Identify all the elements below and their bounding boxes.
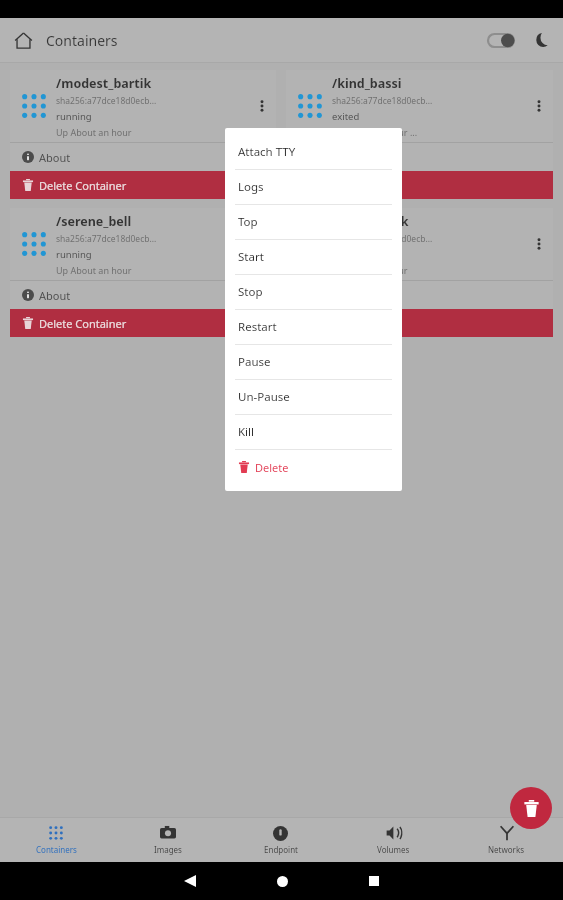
button[interactable]: Images [112,818,224,862]
button[interactable]: More options [525,208,553,280]
button[interactable]: /modest_bartik [10,70,276,171]
staticText: Logs [238,179,264,195]
button[interactable]: Kill [225,415,402,449]
button[interactable]: Top [225,205,402,239]
staticText: Restart [238,319,277,335]
staticText: Top [238,214,258,230]
button[interactable]: More options [248,70,276,142]
staticText: Delete Container [39,178,127,193]
staticText: sha256:a77dce18d0ecb... [56,233,157,245]
button[interactable]: Containers [0,818,112,862]
button[interactable]: About [286,281,553,309]
staticText: Networks [488,844,525,855]
staticText: sha256:a77dce18d0ecb... [56,95,157,107]
staticText: running [56,248,92,261]
button[interactable]: About [10,143,276,171]
staticText: Images [154,844,182,855]
button[interactable]: /serene_bell [10,208,276,309]
staticText: Attach TTY [238,144,296,160]
button[interactable]: More options [525,70,553,142]
staticText: Start [238,249,264,265]
button[interactable]: Restart [225,310,402,344]
button[interactable]: More options [248,208,276,280]
staticText: exited [332,110,360,123]
staticText: Containers [36,844,77,855]
button[interactable]: Toggle theme [479,18,523,62]
staticText: Delete Container [39,316,127,331]
staticText: /eager_buck [332,213,409,230]
button[interactable]: Delete containers [510,787,552,829]
button[interactable]: /eager_buck [286,208,553,309]
staticText: Up About an hour [56,264,132,276]
staticText: Delete [255,460,289,475]
staticText: Un-Pause [238,389,290,405]
staticText: Pause [238,354,271,370]
staticText: /serene_bell [56,213,132,230]
button[interactable]: Home [0,18,46,62]
button[interactable]: Stop [225,275,402,309]
button[interactable]: Volumes [337,818,450,862]
staticText: sha256:a77dce18d0ecb... [332,95,433,107]
button[interactable]: Pause [225,345,402,379]
button[interactable]: About [286,143,553,171]
staticText: Up About an hour [56,126,132,138]
staticText: Stop [238,284,263,300]
button[interactable]: Un-Pause [225,380,402,414]
button[interactable]: Logs [225,170,402,204]
button[interactable]: Delete Container [10,171,553,199]
staticText: Endpoint [264,844,298,855]
staticText: sha256:a77dce18d0ecb... [332,233,433,245]
staticText: Kill [238,424,255,440]
staticText: About [39,150,71,165]
button[interactable]: Endpoint [224,818,337,862]
button[interactable]: Delete [225,450,402,484]
button[interactable]: Attach TTY [225,135,402,169]
staticText: /modest_bartik [56,75,152,92]
staticText: running [56,110,92,123]
staticText: Up About an hour ... [332,126,418,138]
staticText: /kind_bassi [332,75,402,92]
button[interactable]: Networks [450,818,563,862]
button[interactable]: Start [225,240,402,274]
button[interactable]: Dark mode [523,18,563,62]
staticText: Volumes [377,844,410,855]
button[interactable]: About [10,281,276,309]
button[interactable]: /kind_bassi [286,70,553,171]
staticText: Up About an hour [332,264,408,276]
staticText: Containers [46,31,118,50]
button[interactable]: Delete Container [10,309,553,337]
staticText: About [39,288,71,303]
